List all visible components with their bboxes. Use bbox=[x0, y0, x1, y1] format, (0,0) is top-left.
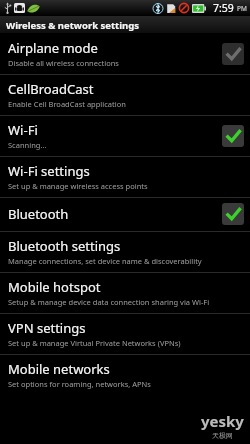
button[interactable]: Mobile hotspot bbox=[0, 273, 250, 313]
staticText: Set up & manage Virtual Private Networks… bbox=[8, 338, 181, 348]
button[interactable]: Toggle bbox=[222, 203, 244, 225]
button[interactable]: Bluetooth bbox=[0, 198, 250, 231]
staticText: Airplane mode bbox=[8, 39, 98, 57]
staticText: PM bbox=[237, 4, 247, 13]
button[interactable]: Mobile networks bbox=[0, 355, 250, 395]
button[interactable]: Wi-Fi bbox=[0, 116, 250, 156]
button[interactable]: Toggle bbox=[222, 125, 244, 147]
staticText: 天极网 bbox=[212, 431, 233, 440]
button[interactable]: CellBroadCast bbox=[0, 75, 250, 115]
staticText: Wi-Fi settings bbox=[8, 162, 90, 180]
staticText: Wi-Fi bbox=[8, 121, 38, 139]
staticText: CellBroadCast bbox=[8, 80, 94, 98]
staticText: Bluetooth bbox=[8, 205, 69, 223]
staticText: Set up & manage wireless access points bbox=[8, 181, 148, 191]
button[interactable]: Bluetooth settings bbox=[0, 232, 250, 272]
button[interactable]: VPN settings bbox=[0, 314, 250, 354]
button[interactable]: Airplane mode bbox=[0, 34, 250, 74]
staticText: Manage connections, set device name & di… bbox=[8, 256, 202, 266]
button[interactable]: Toggle bbox=[222, 43, 244, 65]
staticText: VPN settings bbox=[8, 319, 86, 337]
staticText: 7:59 bbox=[213, 1, 234, 15]
staticText: Set options for roaming, networks, APNs bbox=[8, 379, 151, 389]
staticText: Enable Cell BroadCast application bbox=[8, 99, 126, 109]
staticText: Bluetooth settings bbox=[8, 237, 121, 255]
staticText: Setup & manage device data connection sh… bbox=[8, 297, 210, 307]
staticText: Mobile hotspot bbox=[8, 278, 101, 296]
staticText: yesky bbox=[201, 411, 244, 431]
staticText: Disable all wireless connections bbox=[8, 58, 119, 68]
button[interactable]: Wi-Fi settings bbox=[0, 157, 250, 197]
staticText: Mobile networks bbox=[8, 360, 110, 378]
staticText: Scanning... bbox=[8, 140, 47, 150]
staticText: Wireless & network settings bbox=[6, 19, 139, 32]
